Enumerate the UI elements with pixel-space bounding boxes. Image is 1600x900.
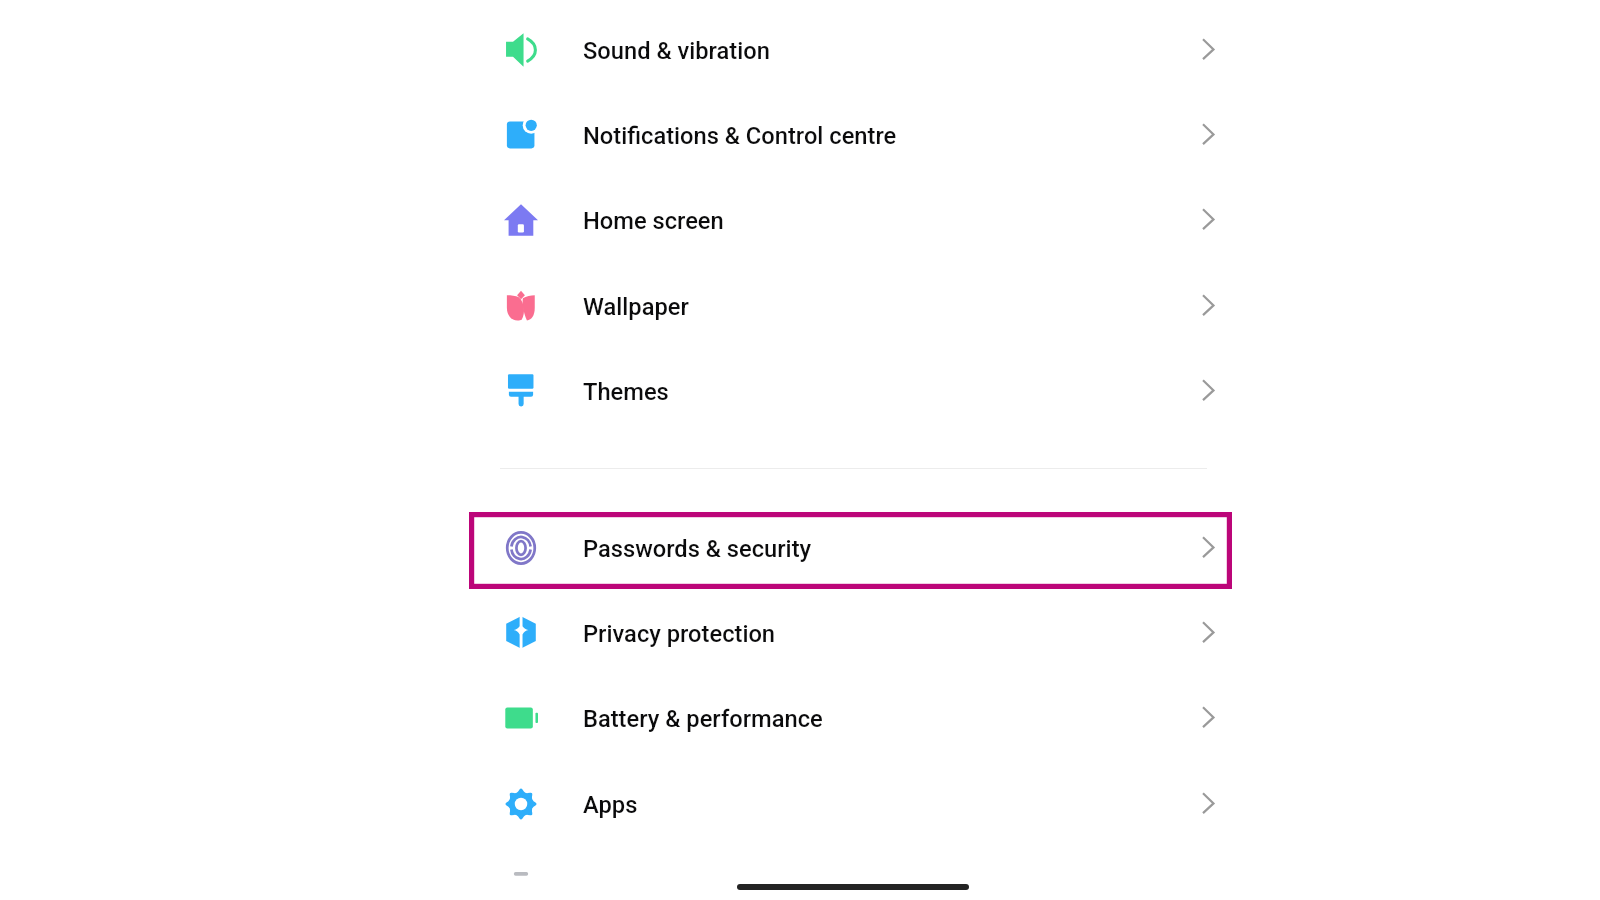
- button[interactable]: Home screen: [469, 177, 1232, 262]
- button[interactable]: Wallpaper: [469, 263, 1232, 348]
- other: Open Home screen: [1203, 209, 1224, 230]
- other: Open Privacy protection: [1203, 622, 1224, 643]
- staticText: Privacy protection: [583, 620, 776, 648]
- staticText: Apps: [583, 791, 638, 819]
- button[interactable]: [469, 846, 1232, 900]
- button[interactable]: Themes: [469, 348, 1232, 433]
- button[interactable]: Notifications & Control centre: [469, 92, 1232, 177]
- staticText: Notifications & Control centre: [583, 122, 897, 150]
- staticText: Themes: [583, 378, 669, 406]
- other: Open Themes: [1203, 380, 1224, 401]
- button[interactable]: Sound & vibration: [469, 7, 1232, 92]
- other: Open Battery & performance: [1203, 707, 1224, 728]
- button[interactable]: Passwords & security: [469, 505, 1232, 590]
- staticText: Passwords & security: [583, 535, 812, 563]
- staticText: Sound & vibration: [583, 37, 770, 65]
- staticText: Home screen: [583, 207, 724, 235]
- button[interactable]: Privacy protection: [469, 590, 1232, 675]
- other: Open Wallpaper: [1203, 295, 1224, 316]
- other: Open Sound & vibration: [1203, 39, 1224, 60]
- button[interactable]: Apps: [469, 761, 1232, 846]
- staticText: Battery & performance: [583, 705, 823, 733]
- staticText: Wallpaper: [583, 293, 689, 321]
- other: Open Apps: [1203, 793, 1224, 814]
- other: Open Passwords & security: [1203, 537, 1224, 558]
- other: Open Notifications & Control centre: [1203, 124, 1224, 145]
- button[interactable]: Battery & performance: [469, 675, 1232, 760]
